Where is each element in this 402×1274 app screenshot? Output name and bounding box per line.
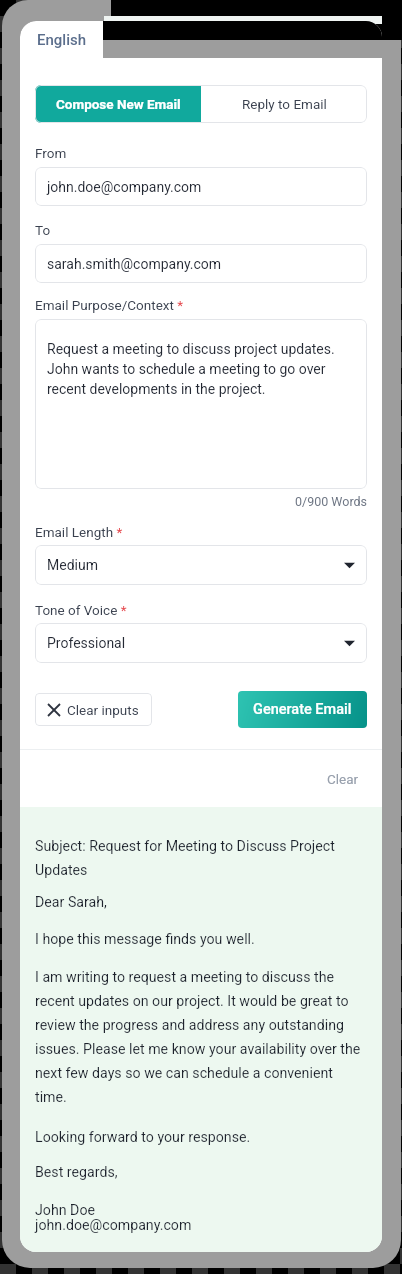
staticText: Request a meeting to discuss project upd… <box>47 341 355 398</box>
staticText: Email Purpose/Context * <box>35 297 184 313</box>
other: Expand <box>344 638 355 649</box>
button[interactable]: Request a meeting to discuss project upd… <box>35 319 367 489</box>
button[interactable]: Compose New Email <box>35 85 201 123</box>
button[interactable]: Professional <box>35 623 367 663</box>
button[interactable]: Clear inputs <box>35 693 152 726</box>
staticText: Tone of Voice * <box>35 602 127 618</box>
staticText: Subject: Request for Meeting to Discuss … <box>35 838 367 878</box>
button[interactable]: Medium <box>35 545 367 585</box>
staticText: From <box>35 145 67 161</box>
staticText: John Doe john.doe@company.com <box>35 1202 192 1233</box>
button[interactable]: Generate Email <box>238 691 367 728</box>
staticText: English <box>37 31 87 49</box>
staticText: Looking forward to your response. <box>35 1129 251 1146</box>
staticText: Generate Email <box>253 701 352 718</box>
staticText: Clear inputs <box>67 702 139 718</box>
other: Expand <box>344 560 355 571</box>
button[interactable]: Reply to Email <box>201 85 367 123</box>
staticText: To <box>35 222 51 238</box>
staticText: I hope this message finds you well. <box>35 931 255 948</box>
staticText: sarah.smith@company.com <box>47 256 222 272</box>
staticText: Email Length * <box>35 524 123 540</box>
staticText: Professional <box>47 635 126 651</box>
staticText: 0/900 Words <box>35 494 367 509</box>
staticText: Medium <box>47 557 98 573</box>
staticText: Compose New Email <box>56 96 181 112</box>
button[interactable]: Clear <box>319 765 367 793</box>
staticText: Best regards, <box>35 1164 118 1181</box>
button[interactable]: john.doe@company.com <box>35 167 367 206</box>
staticText: Clear <box>327 771 359 787</box>
button[interactable]: sarah.smith@company.com <box>35 244 367 283</box>
staticText: Dear Sarah, <box>35 894 107 911</box>
staticText: john.doe@company.com <box>47 179 202 195</box>
staticText: I am writing to request a meeting to dis… <box>35 969 367 1105</box>
staticText: Reply to Email <box>242 96 327 112</box>
button[interactable]: English <box>20 21 103 58</box>
